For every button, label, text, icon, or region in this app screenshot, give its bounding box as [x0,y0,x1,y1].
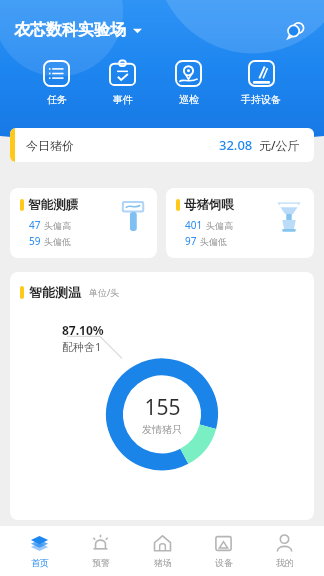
button[interactable]: 预警 [79,530,122,572]
staticText: 事件 [113,93,133,106]
staticText: 头偏低 [44,236,71,247]
staticText: 智能测温 [29,284,81,300]
button[interactable]: 手持设备 [235,58,287,108]
button[interactable]: 农芯数科实验场 [14,18,142,42]
button[interactable]: 猪场 [141,530,184,572]
staticText: 手持设备 [241,93,281,106]
staticText: 今日猪价 [26,138,74,153]
button[interactable]: 任务 [37,58,76,108]
staticText: 农芯数科实验场 [14,20,126,40]
staticText: 47 [29,218,41,232]
staticText: 401 [185,218,203,232]
staticText: 155 [144,393,181,422]
staticText: 87.10% [62,322,104,338]
button[interactable]: 首页 [18,530,61,572]
staticText: 59 [29,234,41,248]
button[interactable]: 事件 [103,58,142,108]
button[interactable]: 母猪饲喂 [166,188,314,258]
button[interactable]: 设备 [202,530,245,572]
button[interactable]: 巡检 [169,58,208,108]
staticText: 头偏高 [206,220,233,231]
staticText: 首页 [31,557,49,568]
staticText: 我的 [276,557,294,568]
staticText: 头偏低 [200,236,227,247]
staticText: 智能测膘 [28,197,78,213]
button[interactable]: Messages [282,16,310,44]
staticText: 预警 [92,557,110,568]
staticText: 设备 [215,557,233,568]
button[interactable]: 智能测膘 [10,188,157,258]
staticText: 巡检 [179,93,199,106]
staticText: 母猪饲喂 [184,197,234,213]
staticText: 元/公斤 [259,137,300,153]
staticText: 单位/头 [89,286,120,298]
staticText: 头偏高 [44,220,71,231]
staticText: 32.08 [219,136,253,154]
staticText: 97 [185,234,197,248]
button[interactable]: 智能测温 [10,272,314,520]
staticText: 发情猪只 [142,423,182,436]
staticText: 猪场 [154,557,172,568]
staticText: 配种舍1 [62,339,102,354]
button[interactable]: 今日猪价 [10,128,314,162]
staticText: 任务 [47,93,67,106]
button[interactable]: 我的 [263,530,306,572]
